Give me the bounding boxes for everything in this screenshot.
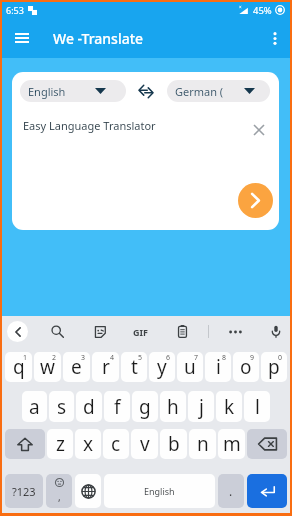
staticText: ,	[58, 490, 61, 504]
staticText: o	[240, 354, 252, 380]
staticText: q	[13, 354, 25, 380]
button[interactable]: Swap languages	[135, 80, 157, 102]
staticText: g	[139, 394, 151, 420]
staticText: i	[216, 354, 221, 380]
button[interactable]: Open navigation menu	[2, 18, 38, 58]
button[interactable]: m	[218, 429, 245, 459]
staticText: l	[255, 394, 260, 420]
button[interactable]: n	[189, 429, 216, 459]
button[interactable]: d	[76, 391, 102, 422]
button[interactable]: s	[49, 391, 74, 422]
button[interactable]: Shift	[5, 429, 45, 459]
staticText: 8	[222, 353, 227, 363]
button[interactable]: Translate	[238, 183, 273, 218]
button[interactable]: t	[121, 352, 147, 382]
staticText: 9	[250, 353, 255, 363]
staticText: x	[83, 431, 94, 457]
button[interactable]: l	[244, 391, 270, 422]
button[interactable]: q	[5, 352, 32, 382]
staticText: 0	[278, 353, 283, 363]
staticText: Easy Language Translator	[23, 118, 156, 133]
button[interactable]: c	[103, 429, 129, 459]
staticText: y	[157, 354, 167, 380]
staticText: 1	[23, 353, 28, 363]
button[interactable]: Stickers	[86, 316, 113, 347]
button[interactable]: k	[216, 391, 242, 422]
button[interactable]: j	[188, 391, 214, 422]
button[interactable]: u	[177, 352, 203, 382]
button[interactable]: f	[104, 391, 130, 422]
staticText: d	[83, 394, 95, 420]
button[interactable]: More options	[222, 316, 249, 347]
button[interactable]: v	[131, 429, 158, 459]
button[interactable]: o	[233, 352, 259, 382]
staticText: .	[229, 483, 233, 499]
button[interactable]: Emoji and comma	[46, 474, 72, 508]
staticText: ?123	[12, 484, 36, 499]
staticText: 7	[194, 353, 199, 363]
button[interactable]: b	[160, 429, 187, 459]
staticText: f	[114, 394, 121, 420]
button[interactable]: z	[47, 429, 73, 459]
button[interactable]: .	[218, 474, 244, 508]
staticText: h	[167, 394, 179, 420]
button[interactable]: ?123	[5, 474, 43, 508]
staticText: m	[223, 431, 241, 457]
button[interactable]: p	[261, 352, 287, 382]
staticText: z	[56, 431, 65, 457]
button[interactable]: Enter	[247, 474, 287, 508]
staticText: 6:53	[6, 4, 24, 16]
staticText: 5	[138, 353, 143, 363]
staticText: j	[199, 394, 204, 420]
staticText: c	[111, 431, 121, 457]
staticText: We -Translate	[53, 29, 144, 48]
button[interactable]: Voice input	[262, 316, 289, 347]
button[interactable]: w	[34, 352, 61, 382]
staticText: English	[28, 84, 66, 99]
staticText: 45%	[253, 4, 272, 17]
button[interactable]: Search	[44, 316, 71, 347]
staticText: u	[184, 354, 196, 380]
button[interactable]: e	[63, 352, 90, 382]
button[interactable]: Clear text	[250, 121, 268, 139]
staticText: a	[29, 394, 40, 420]
staticText: p	[268, 354, 280, 380]
staticText: GIF	[133, 326, 148, 338]
staticText: k	[224, 394, 235, 420]
staticText: 4	[110, 353, 115, 363]
button[interactable]: h	[160, 391, 186, 422]
staticText: v	[140, 431, 150, 457]
staticText: 2	[52, 353, 57, 363]
button[interactable]: More options	[262, 18, 288, 58]
button[interactable]: r	[92, 352, 119, 382]
staticText: s	[57, 394, 67, 420]
staticText: 3	[81, 353, 86, 363]
staticText: w	[40, 354, 55, 380]
button[interactable]: German (	[167, 80, 270, 102]
button[interactable]: y	[149, 352, 175, 382]
staticText: t	[131, 354, 138, 380]
staticText: e	[71, 354, 82, 380]
button[interactable]: a	[22, 391, 47, 422]
button[interactable]: g	[132, 391, 158, 422]
staticText: n	[197, 431, 209, 457]
staticText: German (	[175, 84, 224, 99]
button[interactable]: Backspace	[247, 429, 287, 459]
staticText: r	[102, 354, 110, 380]
staticText: b	[168, 431, 180, 457]
button[interactable]: i	[205, 352, 231, 382]
staticText: 6	[166, 353, 171, 363]
button[interactable]: English	[104, 474, 215, 508]
button[interactable]: Back	[7, 321, 28, 342]
button[interactable]: GIF	[127, 316, 154, 347]
button[interactable]: Change keyboard language	[75, 474, 101, 508]
staticText: English	[144, 485, 175, 497]
button[interactable]: x	[75, 429, 101, 459]
button[interactable]: English	[20, 80, 126, 102]
button[interactable]: Clipboard	[169, 316, 196, 347]
